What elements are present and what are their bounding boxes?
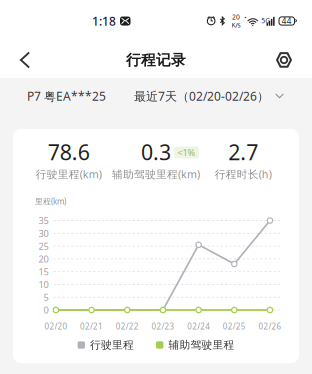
staticText: 最近7天（02/20-02/26）: [134, 88, 269, 104]
button[interactable]: 设置: [256, 42, 312, 78]
staticText: 行程时长(h): [215, 167, 272, 181]
staticText: 2.7: [228, 138, 258, 166]
staticText: 行驶里程: [90, 338, 134, 351]
staticText: <1%: [177, 146, 195, 159]
staticText: 02/23: [151, 321, 174, 332]
staticText: 行驶里程(km): [36, 167, 102, 181]
staticText: 30: [38, 227, 48, 239]
staticText: 1:18: [92, 13, 116, 29]
staticText: 02/26: [258, 321, 281, 332]
staticText: 02/21: [80, 321, 103, 332]
button[interactable]: 返回: [0, 42, 50, 78]
staticText: 78.6: [48, 138, 90, 166]
staticText: K/s: [231, 21, 240, 29]
staticText: 44: [282, 16, 292, 26]
staticText: 15: [38, 265, 48, 278]
staticText: 辅助驾驶里程: [168, 338, 234, 351]
staticText: 20: [38, 253, 48, 265]
staticText: 02/20: [44, 321, 67, 332]
staticText: 里程(km): [35, 196, 66, 207]
staticText: 20: [232, 12, 240, 21]
button[interactable]: P7 粤EA***25: [0, 80, 106, 112]
staticText: 25: [38, 240, 48, 252]
button[interactable]: 最近7天（02/20-02/26）: [134, 80, 312, 112]
staticText: 10: [38, 278, 48, 291]
staticText: 0: [43, 304, 48, 316]
staticText: 0.3: [141, 138, 171, 166]
staticText: 02/22: [116, 321, 139, 332]
staticText: 02/24: [187, 321, 210, 332]
staticText: 辅助驾驶里程(km): [112, 167, 200, 181]
staticText: 35: [38, 214, 48, 227]
staticText: 02/25: [223, 321, 246, 332]
staticText: 行程记录: [126, 51, 186, 69]
staticText: 5: [43, 291, 48, 303]
staticText: P7 粤EA***25: [27, 88, 106, 104]
staticText: 5G: [261, 16, 270, 25]
